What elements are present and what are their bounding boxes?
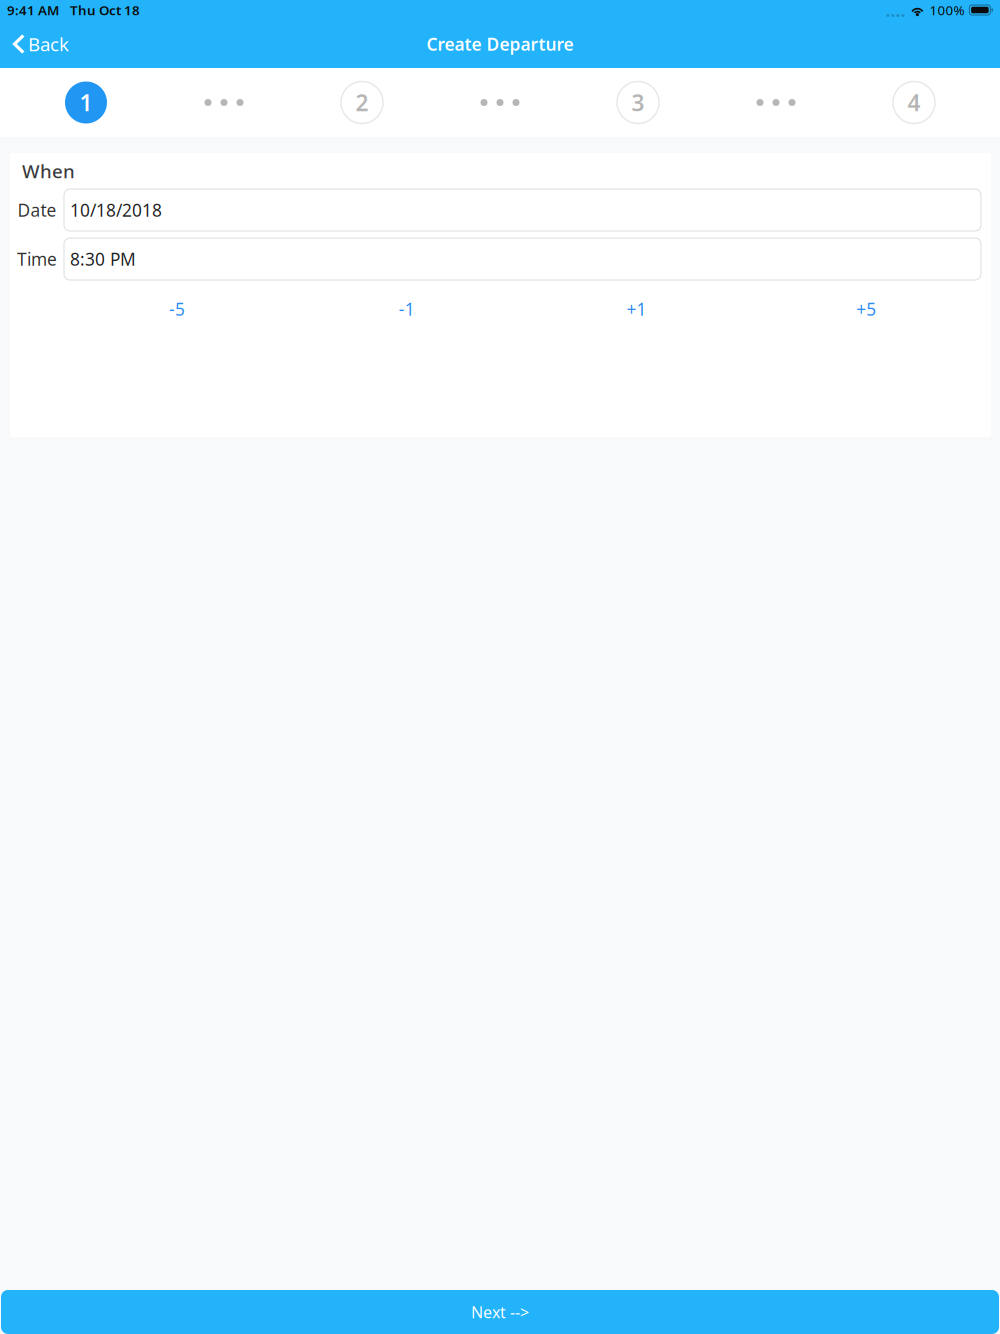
staticText: +1 bbox=[626, 297, 646, 320]
button[interactable]: Minus 5 minutes bbox=[62, 291, 292, 327]
button[interactable]: Minus 1 minute bbox=[292, 291, 522, 327]
staticText: -1 bbox=[399, 297, 415, 320]
staticText: 2 bbox=[355, 87, 368, 117]
staticText: +5 bbox=[856, 297, 876, 320]
staticText: Thu Oct 18 bbox=[70, 1, 140, 19]
staticText: 100% bbox=[929, 1, 964, 19]
staticText: Create Departure bbox=[426, 32, 573, 55]
staticText: 4 bbox=[907, 87, 920, 117]
button[interactable]: Step 4 bbox=[893, 81, 935, 123]
button[interactable]: Step 1, When, current step bbox=[65, 81, 107, 123]
staticText: -5 bbox=[169, 297, 185, 320]
button[interactable]: Plus 1 minute bbox=[521, 291, 751, 327]
button[interactable]: Plus 5 minutes bbox=[751, 291, 981, 327]
staticText: Date bbox=[17, 198, 56, 221]
staticText: 9:41 AM bbox=[7, 1, 59, 19]
button[interactable]: Date, 10/18/2018 bbox=[64, 189, 981, 231]
staticText: 1 bbox=[79, 87, 92, 117]
button[interactable]: Step 3 bbox=[617, 81, 659, 123]
staticText: 8:30 PM bbox=[70, 247, 136, 270]
button[interactable]: Back bbox=[0, 20, 82, 68]
button[interactable]: Time, 8:30 PM bbox=[64, 238, 981, 280]
staticText: Time bbox=[17, 247, 57, 270]
staticText: 3 bbox=[631, 87, 644, 117]
staticText: Back bbox=[28, 32, 69, 56]
staticText: 10/18/2018 bbox=[70, 198, 162, 221]
button[interactable]: Step 2 bbox=[341, 81, 383, 123]
staticText: Next --> bbox=[471, 1301, 529, 1323]
staticText: When bbox=[22, 159, 75, 183]
button[interactable]: Next --> bbox=[1, 1290, 999, 1334]
